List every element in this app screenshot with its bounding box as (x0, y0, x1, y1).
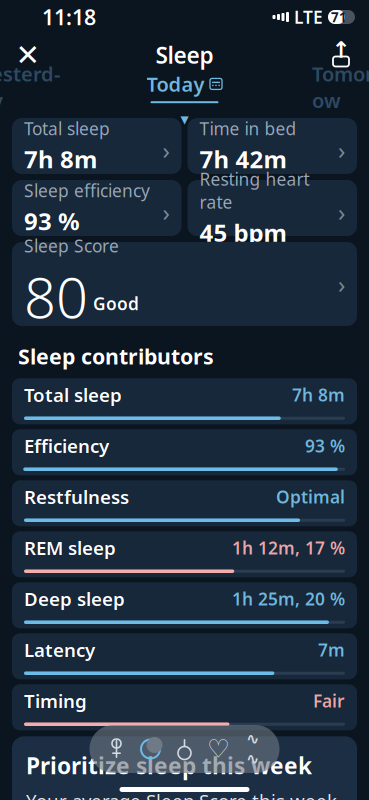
staticText: ▼ (180, 113, 188, 126)
staticText: › (338, 196, 345, 228)
staticText: Deep sleep (24, 586, 125, 611)
staticText: Resting heart rate (199, 167, 309, 213)
button[interactable]: REM sleep (12, 531, 357, 577)
button[interactable]: Sleep efficiency (12, 180, 181, 236)
staticText: Your average Sleep Score this week is 76… (26, 788, 337, 800)
staticText: ♡ (207, 735, 230, 763)
button[interactable]: Today (146, 71, 222, 103)
staticText: ∿ (246, 730, 259, 748)
staticText: 7m (318, 638, 345, 661)
button[interactable]: Heart (201, 732, 235, 766)
button[interactable]: Deep sleep (12, 582, 357, 628)
button[interactable]: Sleep Score (12, 242, 357, 326)
staticText: Timing (24, 688, 87, 713)
staticText: 7h 8m (24, 143, 97, 175)
button[interactable]: Resting heart rate (187, 180, 357, 236)
staticText: › (338, 268, 345, 300)
button[interactable]: Tomorrow (307, 60, 369, 113)
staticText: 93 % (24, 205, 80, 237)
staticText: › (162, 134, 169, 166)
staticText: Sleep contributors (18, 342, 214, 370)
staticText: 7h 8m (292, 383, 345, 406)
staticText: Fair (313, 689, 345, 712)
staticText: 7h 42m (199, 143, 286, 175)
staticText: Restfulness (24, 484, 129, 509)
staticText: Optimal (276, 485, 345, 508)
button[interactable]: Sleep (133, 732, 167, 766)
staticText: REM sleep (24, 535, 116, 560)
staticText: ↑ (331, 37, 350, 63)
button[interactable]: Yesterday (0, 60, 62, 113)
staticText: Today (146, 71, 204, 97)
staticText: Total sleep (24, 117, 110, 140)
staticText: Good (93, 292, 139, 315)
staticText: 45 bpm (199, 217, 286, 248)
button[interactable]: Activity (167, 732, 201, 766)
button[interactable]: Share (319, 35, 363, 75)
button[interactable]: Timing (12, 684, 357, 730)
staticText: LTE (294, 5, 323, 28)
staticText: 80 (24, 259, 88, 334)
button[interactable]: Readiness (99, 732, 133, 766)
staticText: Yesterday (0, 60, 60, 113)
button[interactable]: Restfulness (12, 480, 357, 526)
staticText: Tomorrow (312, 60, 369, 113)
staticText: Latency (24, 637, 95, 662)
staticText: › (338, 134, 345, 166)
staticText: Total sleep (24, 382, 122, 407)
button[interactable]: Total sleep (12, 118, 181, 174)
staticText: Sleep (155, 40, 213, 70)
staticText: Efficiency (24, 433, 109, 458)
staticText: Prioritize sleep this week (26, 750, 312, 780)
staticText: ✕ (15, 38, 40, 72)
staticText: 71 (331, 8, 347, 26)
button[interactable]: Close (6, 35, 50, 75)
staticText: 1h 12m, 17 % (232, 536, 345, 559)
button[interactable]: Trends (235, 732, 269, 766)
button[interactable]: Latency (12, 633, 357, 679)
staticText: Sleep Score (24, 234, 119, 257)
button[interactable]: Time in bed (187, 118, 357, 174)
button[interactable]: Total sleep (12, 378, 357, 424)
staticText: ∿ (246, 750, 259, 768)
button[interactable]: Efficiency (12, 429, 357, 475)
staticText: 1h 25m, 20 % (232, 587, 345, 610)
staticText: Sleep efficiency (24, 179, 150, 202)
staticText: 93 % (305, 434, 345, 457)
staticText: Time in bed (199, 117, 296, 140)
staticText: › (162, 196, 169, 228)
staticText: 11:18 (42, 3, 96, 31)
